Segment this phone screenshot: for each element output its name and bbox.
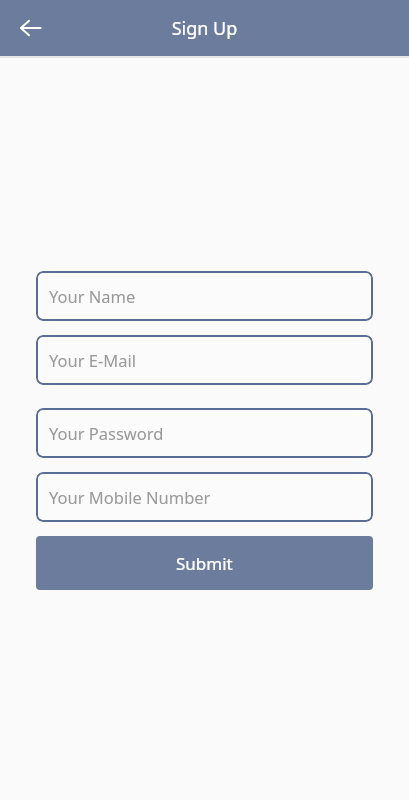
button[interactable]: Your Mobile Number <box>36 472 373 522</box>
staticText: Your E-Mail <box>49 349 137 371</box>
button[interactable]: Submit <box>36 536 373 590</box>
button[interactable]: Your Password <box>36 408 373 458</box>
button[interactable]: Back <box>7 4 55 52</box>
button[interactable]: Your E-Mail <box>36 335 373 385</box>
staticText: Your Password <box>49 422 164 444</box>
staticText: Your Name <box>49 285 136 307</box>
staticText: Submit <box>176 552 233 575</box>
staticText: Your Mobile Number <box>49 486 211 508</box>
button[interactable]: Your Name <box>36 271 373 321</box>
staticText: Sign Up <box>0 16 409 41</box>
